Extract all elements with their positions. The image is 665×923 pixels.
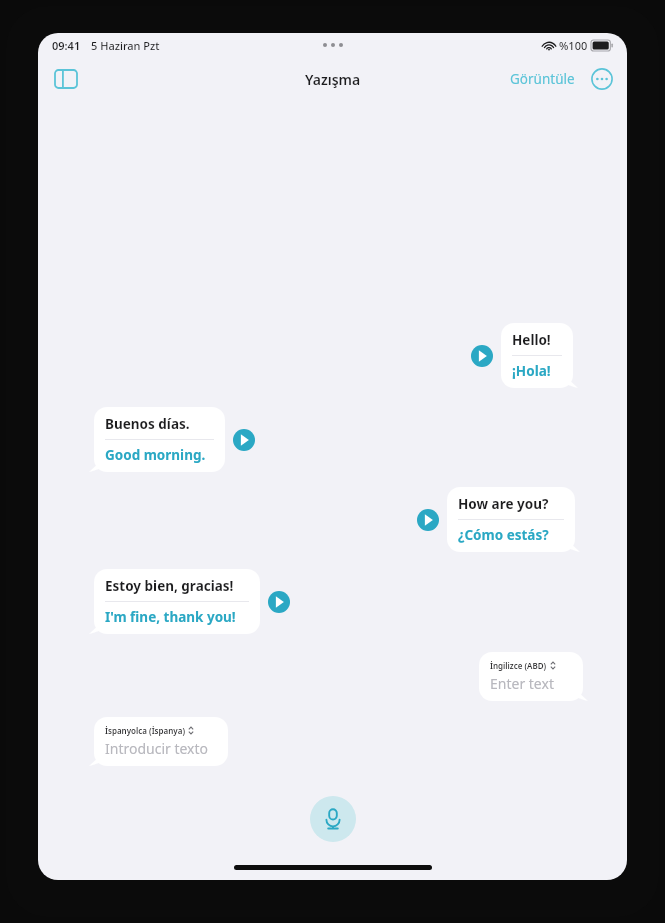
staticText: How are you? — [458, 495, 549, 513]
button[interactable]: Play — [471, 345, 493, 367]
button[interactable]: Play — [233, 429, 255, 451]
staticText: 09:41 — [52, 38, 81, 53]
button[interactable]: İngilizce (ABD) — [479, 652, 583, 701]
button[interactable]: More options — [585, 62, 619, 96]
button[interactable]: Play — [417, 509, 439, 531]
button[interactable]: Play — [268, 591, 290, 613]
staticText: Görüntüle — [510, 70, 575, 88]
button[interactable]: Record with microphone — [310, 796, 356, 842]
button[interactable]: Show sidebar — [46, 59, 86, 99]
button[interactable]: Buenos días. — [94, 407, 225, 472]
staticText: ¡Hola! — [512, 362, 551, 380]
button[interactable]: Görüntüle — [506, 62, 579, 96]
staticText: İngilizce (ABD) — [490, 660, 547, 671]
button[interactable]: How are you? — [447, 487, 575, 552]
staticText: I'm fine, thank you! — [105, 608, 236, 626]
staticText: Good morning. — [105, 446, 206, 464]
button[interactable]: Estoy bien, gracias! — [94, 569, 260, 634]
staticText: Yazışma — [305, 70, 361, 89]
staticText: %100 — [559, 38, 588, 53]
staticText: İspanyolca (İspanya) — [105, 725, 185, 736]
button[interactable]: Hello! — [501, 323, 573, 388]
staticText: Hello! — [512, 331, 551, 349]
staticText: Enter text — [490, 674, 554, 693]
staticText: Introducir texto — [105, 739, 209, 758]
staticText: 5 Haziran Pzt — [91, 38, 160, 53]
button[interactable]: İspanyolca (İspanya) — [94, 717, 228, 766]
staticText: Buenos días. — [105, 415, 190, 433]
staticText: ¿Cómo estás? — [458, 526, 549, 544]
staticText: Estoy bien, gracias! — [105, 577, 234, 595]
